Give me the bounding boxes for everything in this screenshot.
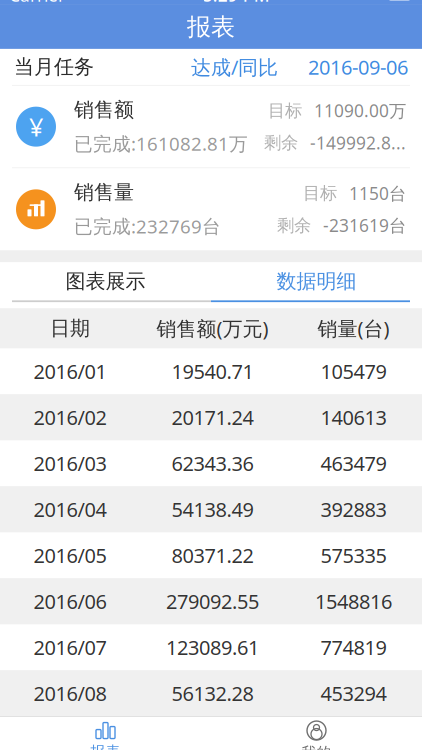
staticText: 销售量 [74,180,134,205]
staticText: 目标 [303,183,337,204]
button[interactable]: 2016/03 [0,440,422,486]
staticText: 数据明细 [276,269,356,294]
staticText: 报表 [187,12,235,42]
staticText: 2016-09-06 [308,54,408,80]
staticText: -149992.8... [310,131,406,154]
staticText: ¥ [29,110,43,143]
staticText: 已完成:161082.81万 [74,131,248,156]
staticText: 目标 [268,100,302,121]
staticText: 774819 [320,634,386,661]
staticText: 2016/06 [33,588,106,615]
staticText: 11090.00万 [314,99,406,122]
button[interactable]: 当月任务 [0,49,422,85]
button[interactable]: 销售量 [0,168,422,250]
staticText: 销量(台) [317,315,389,342]
staticText: 140613 [320,404,386,431]
staticText: 575335 [320,542,386,569]
staticText: 56132.28 [171,680,253,707]
staticText: 463479 [320,450,386,477]
staticText: 销售额(万元) [156,315,268,342]
staticText: 当月任务 [14,55,94,79]
staticText: 392883 [320,496,386,523]
button[interactable]: 2016/04 [0,486,422,532]
staticText: 1548816 [315,588,392,615]
button[interactable]: 2016/06 [0,578,422,624]
staticText: 报表 [90,742,120,750]
staticText: 已完成:232769台 [74,214,221,238]
staticText: 图表展示 [65,269,145,294]
staticText: 剩余 [277,215,311,236]
button[interactable]: 2016/08 [0,670,422,716]
staticText: 达成/同比 [191,54,278,80]
staticText: 62343.36 [171,450,253,477]
staticText: 123089.61 [166,634,259,661]
button[interactable]: 2016/01 [0,348,422,394]
staticText: 279092.55 [166,588,259,615]
staticText: 日期 [50,316,90,341]
staticText: 19540.71 [171,358,253,385]
button[interactable]: 2016/07 [0,624,422,670]
staticText: 2016/04 [33,496,106,523]
button[interactable]: 我的 [211,717,422,750]
staticText: 20171.24 [171,404,253,431]
staticText: 453294 [320,680,386,707]
button[interactable]: 2016/05 [0,532,422,578]
staticText: 我的 [301,743,331,750]
staticText: 80371.22 [171,542,253,569]
staticText: 1150台 [349,182,406,205]
staticText: 2016/02 [33,404,106,431]
staticText: 剩余 [264,132,298,153]
staticText: -231619台 [323,214,406,237]
staticText: Carrier [9,0,65,6]
button[interactable]: ¥ [0,86,422,168]
staticText: 2016/08 [33,680,106,707]
button[interactable]: 数据明细 [211,262,422,300]
staticText: 5:29 PM [203,0,270,6]
staticText: 2016/03 [33,450,106,477]
button[interactable]: 图表展示 [0,262,211,300]
staticText: 2016/01 [33,358,106,385]
staticText: 54138.49 [171,496,253,523]
staticText: 2016/07 [33,634,106,661]
staticText: 105479 [320,358,386,385]
staticText: 销售额 [74,97,134,122]
staticText: 2016/05 [33,542,106,569]
button[interactable]: 报表 [0,717,211,750]
button[interactable]: 2016/02 [0,394,422,440]
